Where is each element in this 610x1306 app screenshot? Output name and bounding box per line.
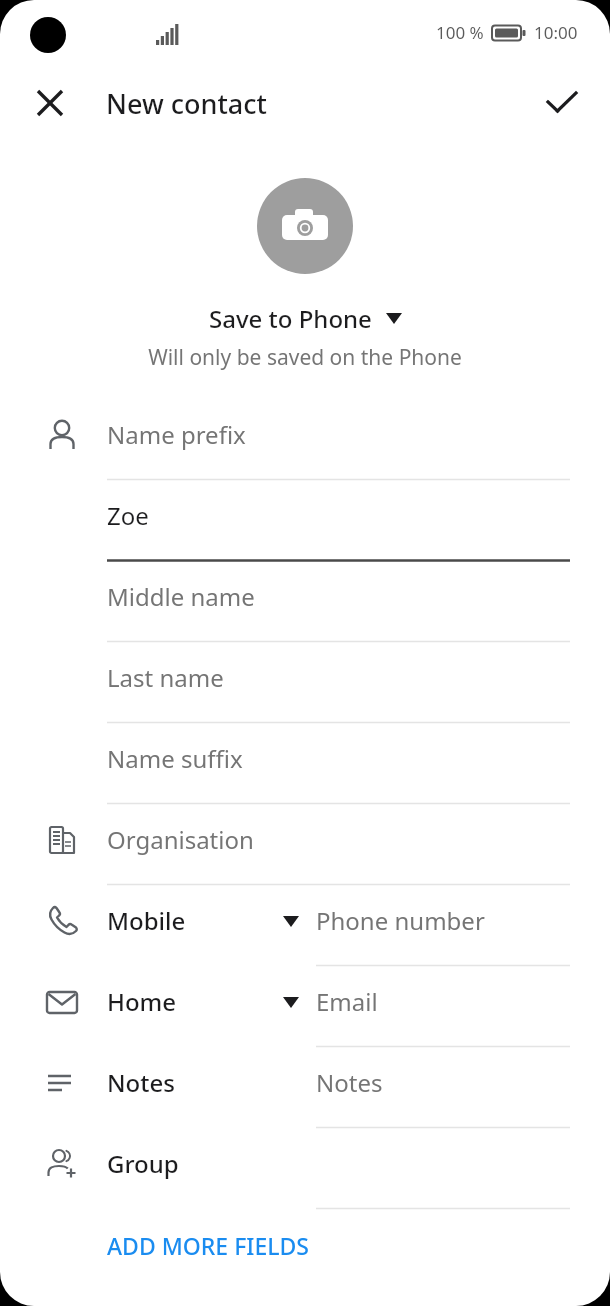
- button[interactable]: Add photo: [257, 178, 353, 274]
- staticText: Middle name: [107, 580, 255, 613]
- staticText: New contact: [106, 85, 267, 122]
- staticText: Zoe: [107, 499, 149, 532]
- staticText: Last name: [107, 661, 224, 694]
- button[interactable]: Home: [0, 967, 610, 1048]
- button[interactable]: Group: [0, 1129, 610, 1210]
- staticText: Email: [316, 985, 378, 1018]
- staticText: Name prefix: [107, 418, 246, 451]
- button[interactable]: Zoe: [0, 481, 610, 562]
- staticText: 10:00: [534, 21, 578, 44]
- button[interactable]: Close: [26, 79, 74, 127]
- staticText: Home: [107, 985, 177, 1018]
- staticText: Notes: [316, 1066, 383, 1099]
- button[interactable]: ADD MORE FIELDS: [0, 1210, 610, 1280]
- button[interactable]: Name suffix: [0, 724, 610, 805]
- staticText: 100 %: [436, 21, 484, 44]
- staticText: Notes: [107, 1066, 175, 1099]
- staticText: Save to Phone: [209, 302, 372, 335]
- staticText: Phone number: [316, 904, 485, 937]
- button[interactable]: Middle name: [0, 562, 610, 643]
- staticText: Group: [107, 1147, 179, 1180]
- button[interactable]: Last name: [0, 643, 610, 724]
- staticText: ADD MORE FIELDS: [107, 1230, 309, 1261]
- button[interactable]: Notes: [0, 1048, 610, 1129]
- staticText: Organisation: [107, 823, 254, 856]
- button[interactable]: Save: [536, 77, 588, 129]
- button[interactable]: Mobile: [0, 886, 610, 967]
- staticText: Will only be saved on the Phone: [148, 343, 462, 372]
- button[interactable]: Save to Phone: [201, 300, 410, 337]
- button[interactable]: Name prefix: [0, 400, 610, 481]
- staticText: Name suffix: [107, 742, 243, 775]
- staticText: Mobile: [107, 904, 186, 937]
- button[interactable]: Organisation: [0, 805, 610, 886]
